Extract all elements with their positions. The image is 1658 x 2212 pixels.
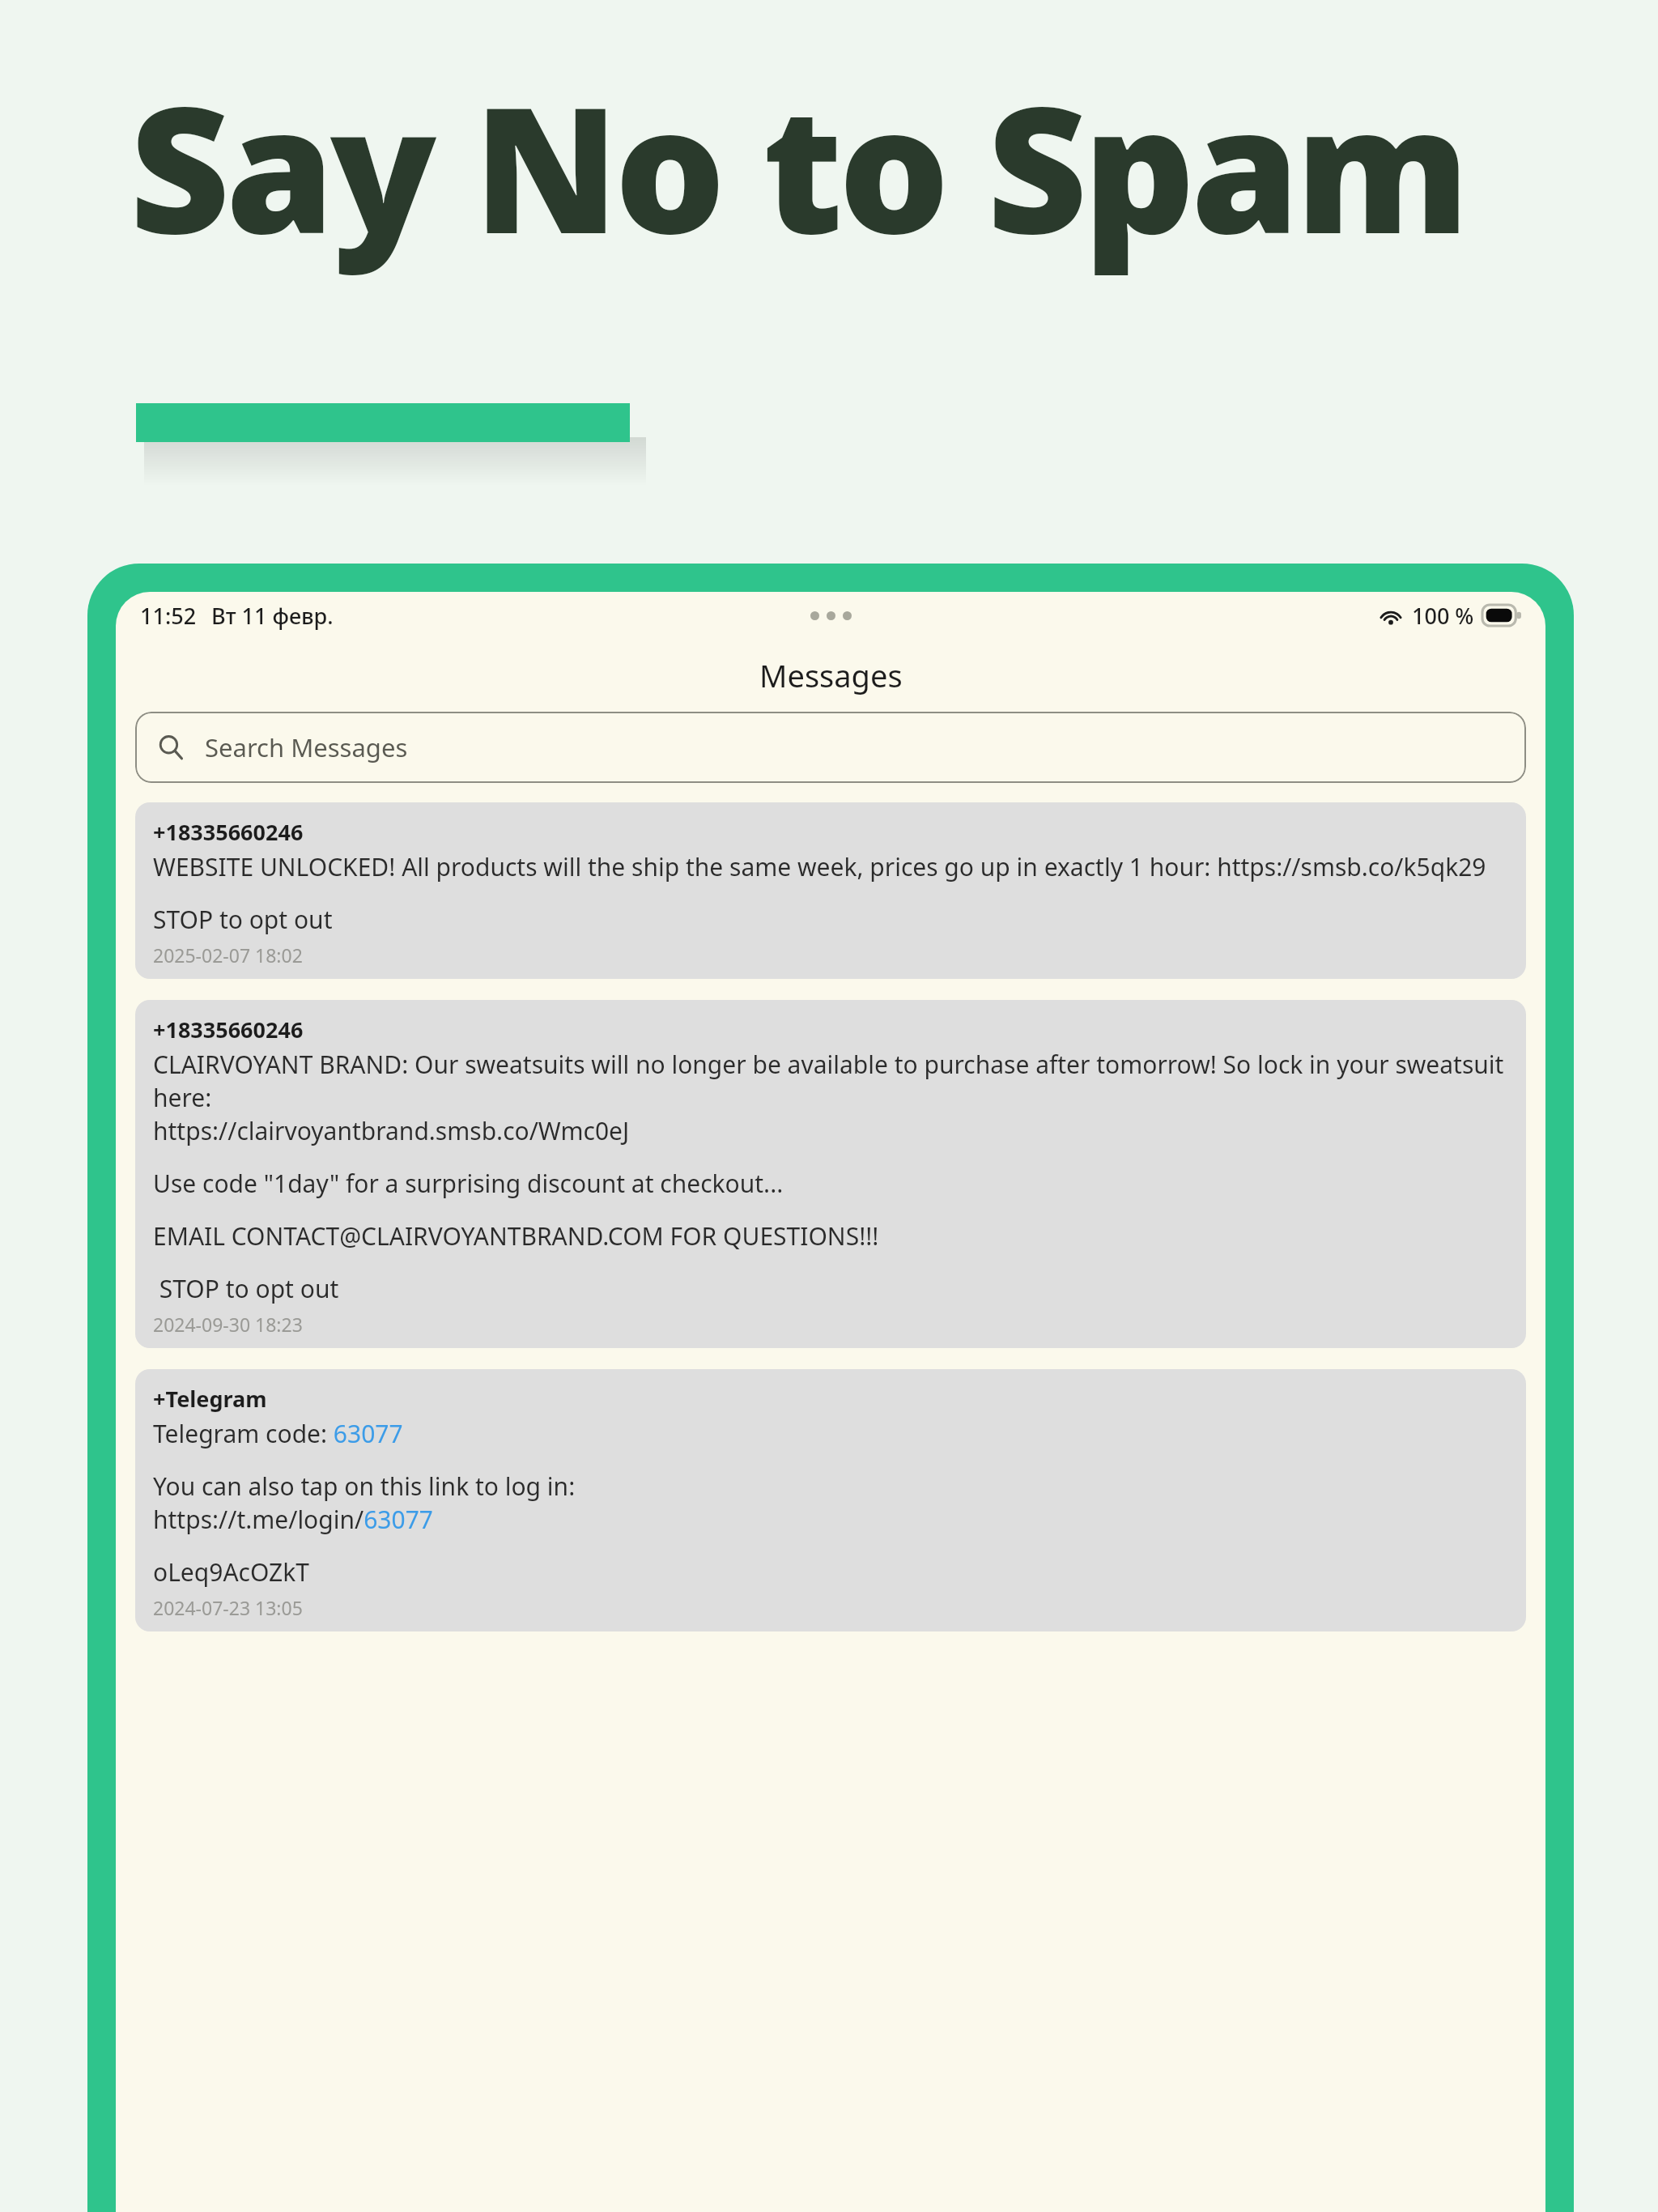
staticText: You can also tap on this link to log in:: [153, 1470, 576, 1503]
staticText: Вт 11 февр.: [211, 601, 334, 631]
staticText: WEBSITE UNLOCKED! All products will the …: [153, 850, 1486, 883]
staticText: https://t.me/login/63077: [153, 1503, 433, 1536]
staticText: 100 %: [1412, 601, 1474, 631]
staticText: STOP to opt out: [153, 903, 333, 936]
staticText: 2024-09-30 18:23: [153, 1312, 303, 1337]
staticText: Say No to Spam: [130, 47, 1466, 284]
staticText: Telegram code: 63077: [153, 1417, 403, 1450]
staticText: oLeq9AcOZkT: [153, 1555, 309, 1589]
staticText: 2025-02-07 18:02: [153, 942, 303, 968]
staticText: EMAIL CONTACT@CLAIRVOYANTBRAND.COM FOR Q…: [153, 1219, 879, 1253]
staticText: +18335660246: [153, 1015, 304, 1044]
button[interactable]: +18335660246: [135, 1000, 1526, 1348]
staticText: +18335660246: [153, 817, 304, 847]
other: Wi-Fi: [1378, 605, 1404, 626]
staticText: Search Messages: [205, 730, 408, 764]
staticText: +Telegram: [153, 1384, 267, 1414]
button[interactable]: +Telegram: [135, 1369, 1526, 1631]
button[interactable]: Search Messages: [135, 712, 1526, 783]
button[interactable]: +18335660246: [135, 802, 1526, 979]
staticText: 11:52: [140, 601, 197, 631]
staticText: 2024-07-23 13:05: [153, 1595, 303, 1620]
staticText: STOP to opt out: [153, 1272, 339, 1305]
staticText: Use code "1day" for a surprising discoun…: [153, 1167, 784, 1200]
staticText: Messages: [759, 654, 903, 696]
other: Battery 100%: [1482, 605, 1521, 626]
staticText: CLAIRVOYANT BRAND: Our sweatsuits will n…: [153, 1048, 1508, 1114]
staticText: https://clairvoyantbrand.smsb.co/Wmc0eJ: [153, 1114, 630, 1147]
